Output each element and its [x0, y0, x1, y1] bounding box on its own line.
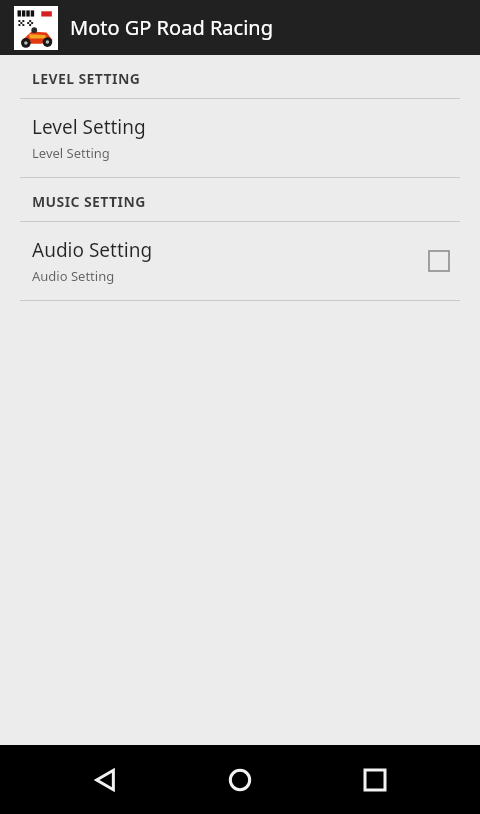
staticText: LEVEL SETTING	[32, 69, 141, 88]
staticText: MUSIC SETTING	[32, 192, 146, 211]
button[interactable]: Back	[75, 750, 135, 810]
button[interactable]: Audio Setting checkbox	[422, 244, 456, 278]
button[interactable]: Audio Setting	[0, 222, 480, 300]
button[interactable]: Level Setting	[0, 99, 480, 177]
button[interactable]: Recent apps	[345, 750, 405, 810]
button[interactable]: Home	[210, 750, 270, 810]
staticText: Level Setting	[32, 144, 110, 162]
staticText: Audio Setting	[32, 237, 153, 263]
staticText: Moto GP Road Racing	[70, 14, 273, 41]
staticText: Audio Setting	[32, 267, 115, 285]
staticText: Level Setting	[32, 114, 146, 140]
